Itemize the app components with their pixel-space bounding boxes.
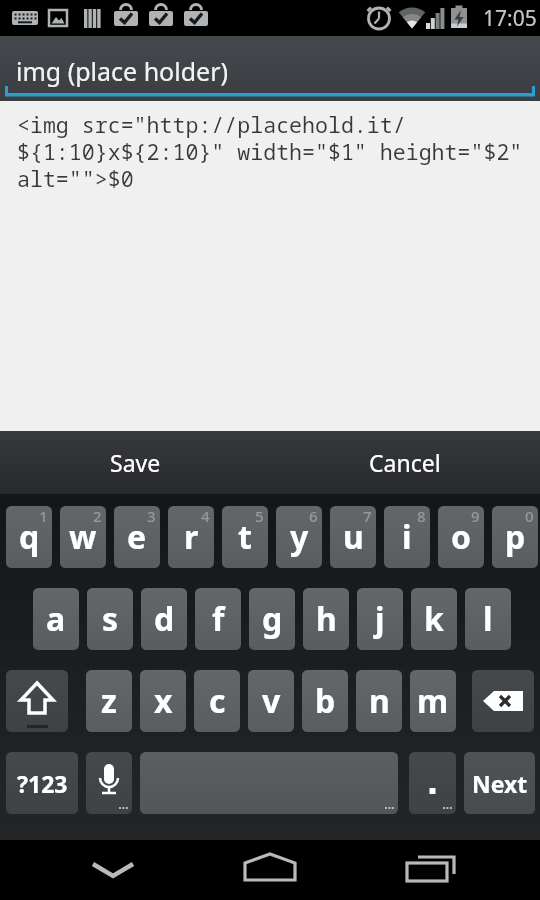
staticText: h [316,597,337,641]
button[interactable]: b [302,670,348,732]
staticText: 1 [39,506,48,526]
button[interactable] [180,840,360,900]
staticText: w [69,515,97,559]
staticText: u [343,515,364,559]
staticText: n [369,679,390,723]
staticText: j [375,597,385,641]
staticText: z [101,679,117,723]
staticText: x [154,679,173,723]
button[interactable]: g [249,588,295,650]
button[interactable] [86,752,132,814]
button[interactable]: a [33,588,79,650]
button[interactable] [140,752,398,814]
button[interactable]: l [465,588,511,650]
button[interactable]: s [87,588,133,650]
staticText: s [102,597,119,641]
staticText: <img src="http://placehold.it/ ${1:10}x$… [17,110,523,194]
staticText: y [290,515,309,559]
button[interactable]: e [114,506,160,568]
staticText: a [46,597,66,641]
button[interactable]: f [195,588,241,650]
button[interactable]: Cancel [270,431,540,494]
button[interactable]: v [248,670,294,732]
button[interactable]: c [194,670,240,732]
button[interactable]: n [356,670,402,732]
staticText: c [209,679,226,723]
staticText: 5 [255,506,264,526]
button[interactable] [472,670,534,732]
staticText: img (place holder) [16,54,228,88]
button[interactable]: z [86,670,132,732]
staticText: o [451,515,472,559]
button[interactable]: j [357,588,403,650]
staticText: f [212,597,225,641]
staticText: 2 [93,506,102,526]
button[interactable]: y [276,506,322,568]
staticText: 0 [525,506,534,526]
button[interactable]: w [60,506,106,568]
button[interactable]: <img src="http://placehold.it/ ${1:10}x$… [0,101,540,431]
button[interactable]: img (place holder) [0,36,540,101]
button[interactable]: r [168,506,214,568]
button[interactable]: u [330,506,376,568]
button[interactable]: q [6,506,52,568]
staticText: k [424,597,444,641]
staticText: v [262,679,281,723]
button[interactable]: i [384,506,430,568]
staticText: Cancel [369,447,441,478]
staticText: d [154,597,175,641]
button[interactable]: Next [464,752,535,814]
button[interactable] [6,670,68,732]
staticText: 6 [309,506,318,526]
staticText: m [417,679,449,723]
staticText: q [19,515,40,559]
staticText: i [402,515,412,559]
button[interactable]: d [141,588,187,650]
button[interactable] [360,840,540,900]
staticText: r [184,515,199,559]
staticText: g [262,597,283,641]
button[interactable]: ?123 [6,752,78,814]
staticText: t [238,515,252,559]
staticText: 17:05 [483,4,537,33]
button[interactable]: Save [0,431,270,494]
staticText: p [505,515,526,559]
staticText: 4 [201,506,210,526]
button[interactable] [0,840,180,900]
staticText: 8 [417,506,426,526]
button[interactable]: t [222,506,268,568]
staticText: b [315,679,336,723]
button[interactable]: m [410,670,456,732]
staticText: 7 [363,506,372,526]
button[interactable]: o [438,506,484,568]
button[interactable]: k [411,588,457,650]
staticText: Next [472,768,528,799]
staticText: ?123 [17,768,68,799]
staticText: 3 [147,506,156,526]
staticText: e [127,515,147,559]
staticText: Save [110,447,161,478]
button[interactable]: h [303,588,349,650]
button[interactable]: x [140,670,186,732]
button[interactable]: p [492,506,538,568]
staticText: 9 [471,506,480,526]
button[interactable] [409,752,456,814]
staticText: l [483,597,493,641]
